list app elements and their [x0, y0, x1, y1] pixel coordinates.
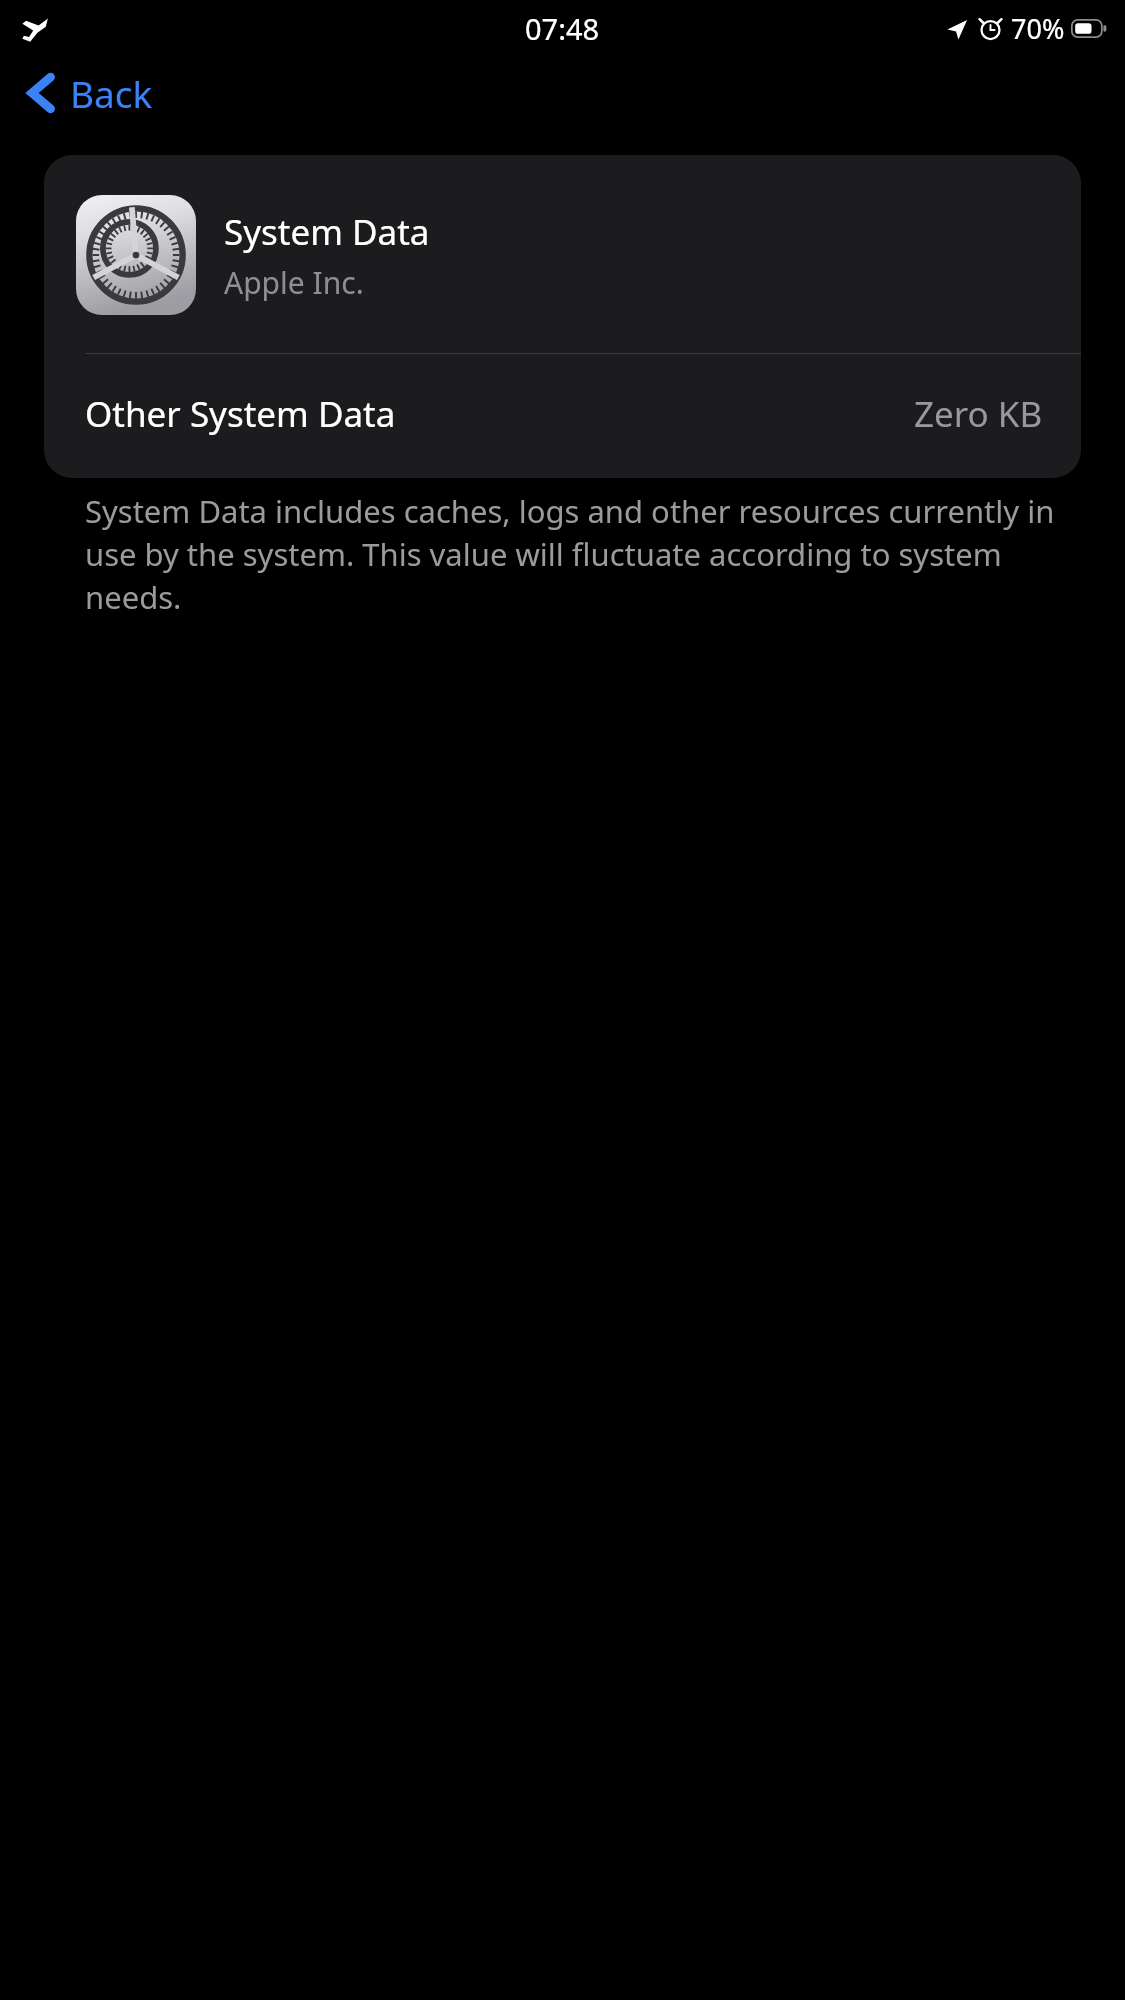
staticText: 07:48: [525, 9, 600, 48]
button[interactable]: Back: [0, 56, 173, 130]
staticText: System Data: [224, 208, 430, 256]
staticText: Apple Inc.: [224, 262, 364, 303]
staticText: Zero KB: [914, 390, 1043, 438]
staticText: System Data includes caches, logs and ot…: [85, 490, 1065, 618]
staticText: Back: [70, 68, 153, 118]
button[interactable]: Other System Data: [44, 354, 1081, 478]
button[interactable]: System Data: [44, 155, 1081, 353]
staticText: 70%: [1011, 10, 1065, 47]
other: Back: [26, 69, 56, 117]
staticText: Other System Data: [85, 390, 396, 438]
